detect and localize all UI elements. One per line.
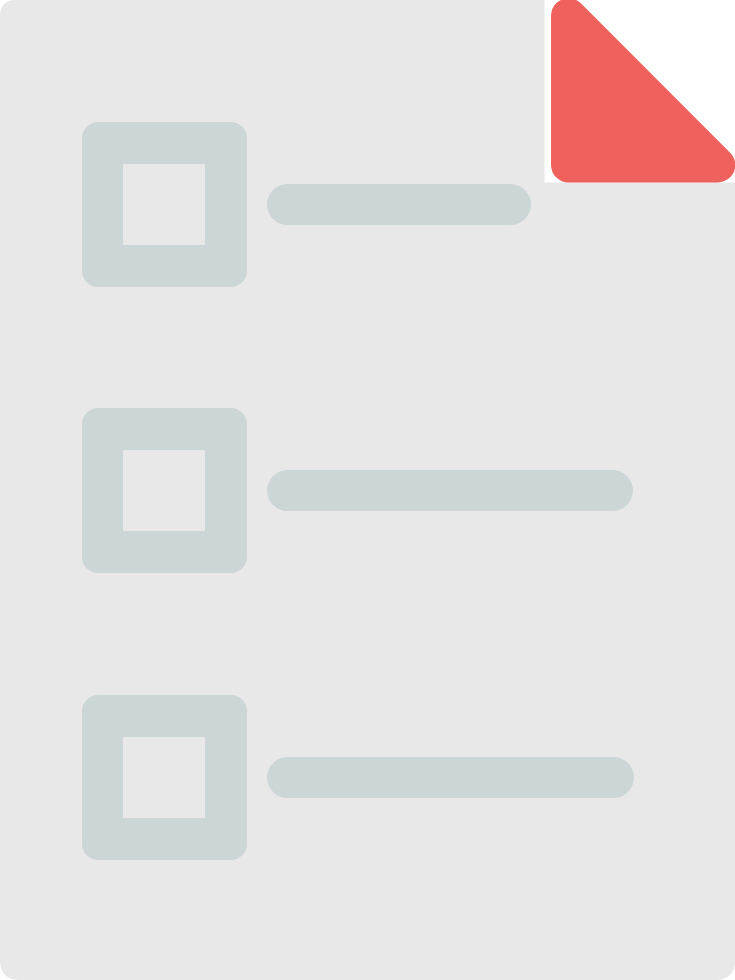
button[interactable]: List item 3 [82, 695, 634, 860]
button[interactable]: List item 2 [82, 408, 633, 573]
button[interactable]: List item 1 [82, 122, 531, 287]
